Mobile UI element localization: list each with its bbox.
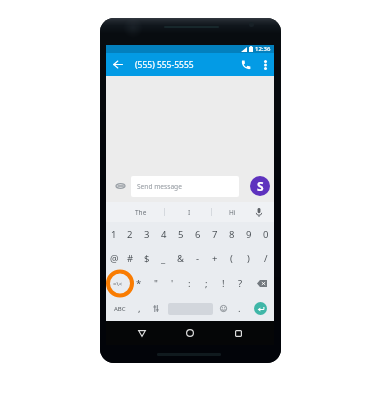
staticText: Send message <box>137 182 182 191</box>
button[interactable]: Send message <box>131 176 239 197</box>
button[interactable]: Back <box>106 53 129 76</box>
staticText: 7 <box>212 228 218 241</box>
button[interactable]: Voice input <box>247 202 271 222</box>
staticText: ' <box>171 277 174 290</box>
staticText: - <box>196 252 200 265</box>
staticText: ! <box>222 277 225 290</box>
button[interactable]: ! <box>215 271 232 296</box>
button[interactable]: Home <box>177 321 203 345</box>
staticText: 6 <box>195 228 201 241</box>
staticText: 9 <box>246 228 252 241</box>
button[interactable]: Enter <box>254 302 267 315</box>
button[interactable]: Recents <box>225 321 251 345</box>
staticText: " <box>154 277 158 290</box>
staticText: 8 <box>229 228 235 241</box>
button[interactable]: @ <box>106 246 122 271</box>
staticText: 3 <box>144 228 150 241</box>
staticText: : <box>188 277 191 290</box>
button[interactable]: ABC <box>107 296 133 321</box>
button[interactable]: 3 <box>138 222 155 246</box>
button[interactable]: 0 <box>257 222 274 246</box>
button[interactable]: $ <box>138 246 155 271</box>
staticText: & <box>177 252 184 265</box>
button[interactable]: 9 <box>240 222 257 246</box>
button[interactable]: # <box>122 246 138 271</box>
staticText: ; <box>205 277 208 290</box>
button[interactable]: Backspace <box>249 271 274 296</box>
staticText: The <box>135 208 147 217</box>
button[interactable]: ? <box>232 271 249 296</box>
staticText: _ <box>161 252 166 265</box>
button[interactable]: * <box>130 271 147 296</box>
staticText: . <box>238 302 241 315</box>
staticText: ? <box>238 277 243 290</box>
button[interactable]: - <box>189 246 206 271</box>
button[interactable]: ; <box>198 271 215 296</box>
staticText: 1 <box>111 228 117 241</box>
button[interactable]: 6 <box>189 222 206 246</box>
button[interactable]: I <box>176 202 202 222</box>
button[interactable]: & <box>172 246 189 271</box>
button[interactable]: ) <box>240 246 257 271</box>
button[interactable]: 2 <box>122 222 138 246</box>
button[interactable]: : <box>181 271 198 296</box>
button[interactable]: Send with Skype <box>250 176 270 196</box>
button[interactable]: The <box>128 202 154 222</box>
button[interactable]: Call <box>235 53 257 76</box>
button[interactable]: . <box>231 296 247 321</box>
button[interactable]: Switch keyboard <box>148 296 164 321</box>
button[interactable]: , <box>131 296 148 321</box>
staticText: # <box>127 252 134 265</box>
button[interactable]: + <box>206 246 223 271</box>
button[interactable]: Hi <box>219 202 245 222</box>
staticText: S <box>257 178 264 194</box>
staticText: $ <box>144 252 150 265</box>
button[interactable]: 7 <box>206 222 223 246</box>
button[interactable]: Back <box>129 321 155 345</box>
button[interactable]: ' <box>164 271 181 296</box>
button[interactable]: 5 <box>172 222 189 246</box>
button[interactable]: 1 <box>106 222 122 246</box>
button[interactable]: Attach <box>110 175 131 197</box>
staticText: 2 <box>127 228 133 241</box>
staticText: =\< <box>113 280 123 288</box>
button[interactable]: =\< <box>106 271 130 296</box>
staticText: @ <box>110 252 119 265</box>
staticText: 0 <box>263 228 269 241</box>
staticText: , <box>138 302 141 315</box>
button[interactable]: 8 <box>223 222 240 246</box>
button[interactable]: Emoji <box>215 296 231 321</box>
button[interactable]: " <box>147 271 164 296</box>
staticText: / <box>264 252 268 265</box>
staticText: 12:36 <box>255 45 271 53</box>
button[interactable]: _ <box>155 246 172 271</box>
staticText: (555) 555-5555 <box>135 59 194 71</box>
button[interactable]: ( <box>223 246 240 271</box>
staticText: * <box>136 277 142 290</box>
button[interactable]: Space <box>168 296 213 321</box>
button[interactable]: / <box>257 246 274 271</box>
staticText: ) <box>247 252 250 265</box>
staticText: Hi <box>229 208 236 217</box>
staticText: I <box>188 208 191 217</box>
staticText: ABC <box>114 305 126 313</box>
button[interactable]: 4 <box>155 222 172 246</box>
staticText: 4 <box>161 228 167 241</box>
staticText: + <box>212 252 218 265</box>
staticText: 5 <box>178 228 184 241</box>
button[interactable]: More options <box>257 53 274 76</box>
staticText: ( <box>230 252 233 265</box>
